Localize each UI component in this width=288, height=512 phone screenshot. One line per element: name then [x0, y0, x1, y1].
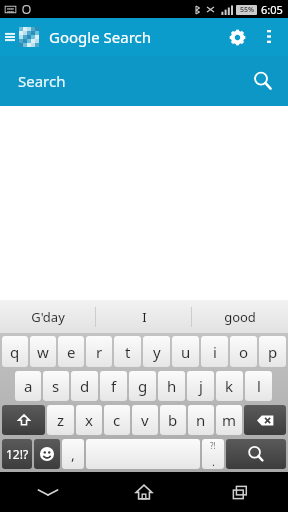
- button[interactable]: g: [129, 371, 156, 401]
- button[interactable]: Home: [96, 472, 192, 512]
- button[interactable]: l: [245, 371, 272, 401]
- staticText: x: [85, 410, 93, 430]
- button[interactable]: [86, 439, 200, 469]
- button[interactable]: ,: [62, 439, 84, 469]
- button[interactable]: z: [47, 405, 74, 435]
- button[interactable]: Emoji: [34, 439, 60, 469]
- button[interactable]: u: [172, 336, 199, 367]
- staticText: g: [138, 376, 148, 396]
- button[interactable]: m: [216, 405, 242, 435]
- staticText: y: [153, 342, 161, 362]
- button[interactable]: w: [30, 336, 56, 367]
- staticText: f: [111, 376, 117, 396]
- staticText: z: [57, 410, 65, 430]
- staticText: l: [257, 376, 261, 396]
- staticText: s: [52, 376, 60, 396]
- button[interactable]: k: [216, 371, 243, 401]
- staticText: G'day: [31, 308, 65, 326]
- button[interactable]: o: [230, 336, 257, 367]
- staticText: h: [167, 376, 177, 396]
- button[interactable]: t: [114, 336, 141, 367]
- button[interactable]: Search: [0, 56, 288, 106]
- button[interactable]: n: [188, 405, 214, 435]
- button[interactable]: b: [160, 405, 186, 435]
- button[interactable]: Hide keyboard: [0, 472, 96, 512]
- button[interactable]: Settings: [220, 20, 254, 54]
- button[interactable]: Shift: [2, 405, 45, 435]
- staticText: .: [212, 454, 215, 469]
- staticText: t: [125, 342, 131, 362]
- button[interactable]: ?!: [202, 439, 224, 469]
- button[interactable]: a: [15, 371, 41, 401]
- button[interactable]: h: [158, 371, 185, 401]
- staticText: a: [24, 376, 33, 396]
- staticText: k: [225, 376, 234, 396]
- button[interactable]: Search: [246, 64, 280, 98]
- button[interactable]: d: [71, 371, 98, 401]
- button[interactable]: x: [76, 405, 102, 435]
- button[interactable]: good: [192, 300, 288, 333]
- staticText: 6:05: [261, 2, 283, 17]
- button[interactable]: s: [43, 371, 69, 401]
- staticText: b: [168, 410, 178, 430]
- button[interactable]: More options: [256, 24, 282, 50]
- staticText: ?!: [210, 440, 216, 451]
- staticText: d: [80, 376, 90, 396]
- staticText: I: [142, 308, 147, 326]
- staticText: Search: [18, 71, 66, 91]
- button[interactable]: q: [2, 336, 28, 367]
- button[interactable]: c: [104, 405, 130, 435]
- staticText: i: [213, 342, 217, 362]
- staticText: u: [181, 342, 191, 362]
- button[interactable]: Search: [226, 439, 286, 469]
- staticText: good: [224, 308, 256, 326]
- button[interactable]: y: [143, 336, 170, 367]
- button[interactable]: e: [58, 336, 84, 367]
- button[interactable]: Numbers and symbols: [2, 439, 32, 469]
- button[interactable]: i: [201, 336, 228, 367]
- staticText: ,: [71, 445, 75, 464]
- staticText: 55%: [240, 5, 254, 15]
- button[interactable]: v: [132, 405, 158, 435]
- staticText: m: [222, 410, 237, 430]
- staticText: r: [96, 342, 103, 362]
- staticText: 12!?: [6, 446, 29, 462]
- button[interactable]: p: [259, 336, 286, 367]
- button[interactable]: r: [86, 336, 112, 367]
- staticText: o: [239, 342, 249, 362]
- button[interactable]: G'day: [0, 300, 96, 333]
- staticText: j: [199, 376, 203, 396]
- staticText: Google Search: [49, 27, 152, 47]
- staticText: c: [113, 410, 121, 430]
- staticText: p: [268, 342, 278, 362]
- button[interactable]: f: [100, 371, 127, 401]
- button[interactable]: Recent apps: [192, 472, 288, 512]
- staticText: w: [37, 342, 49, 362]
- button[interactable]: I: [96, 300, 192, 333]
- staticText: v: [141, 410, 149, 430]
- button[interactable]: Navigate up: [2, 27, 41, 47]
- button[interactable]: Backspace: [244, 405, 286, 435]
- staticText: n: [196, 410, 206, 430]
- staticText: e: [67, 342, 76, 362]
- staticText: q: [10, 342, 20, 362]
- button[interactable]: j: [187, 371, 214, 401]
